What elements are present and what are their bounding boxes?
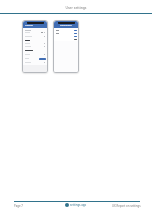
staticText: User settings: [0, 5, 152, 10]
button[interactable]: [39, 58, 46, 60]
staticText: UX Report on settings: [112, 204, 141, 208]
button[interactable]: [23, 42, 47, 45]
button[interactable]: [23, 35, 47, 38]
button[interactable]: [54, 35, 78, 38]
staticText: Settings: [25, 24, 33, 27]
staticText: settings.app: [70, 203, 87, 207]
button[interactable]: [23, 45, 47, 48]
button[interactable]: [54, 38, 78, 41]
button[interactable]: [23, 61, 47, 64]
button[interactable]: [23, 31, 47, 34]
button[interactable]: [23, 53, 47, 56]
button[interactable]: [54, 32, 78, 35]
button[interactable]: [23, 29, 47, 31]
button[interactable]: [54, 29, 78, 32]
staticText: Page 7: [14, 204, 23, 208]
staticText: Preferences: [60, 24, 72, 27]
